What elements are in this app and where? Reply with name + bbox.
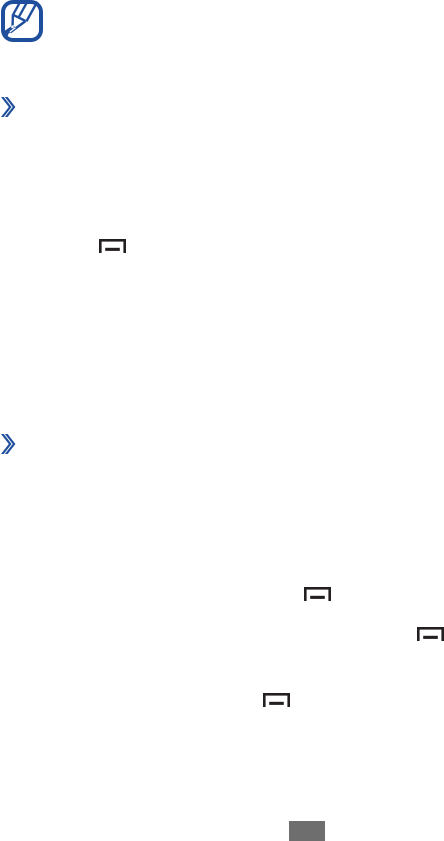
button[interactable]: Section xyxy=(1,434,15,454)
button[interactable]: Menu key xyxy=(304,587,331,601)
button[interactable]: Menu key xyxy=(417,627,444,641)
button[interactable]: Menu key xyxy=(99,239,126,253)
button[interactable]: Note xyxy=(1,0,43,42)
button[interactable]: Menu key xyxy=(263,693,290,707)
button[interactable]: Section xyxy=(1,97,15,117)
